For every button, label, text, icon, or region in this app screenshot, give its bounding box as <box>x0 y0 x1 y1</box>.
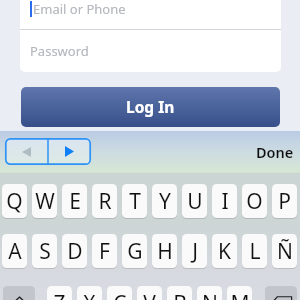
button[interactable]: X <box>77 286 102 300</box>
staticText: H <box>157 237 173 266</box>
button[interactable]: Backspace <box>265 286 297 300</box>
button[interactable]: O <box>242 184 267 218</box>
button[interactable]: T <box>122 184 147 218</box>
staticText: Y <box>159 187 171 216</box>
button[interactable]: H <box>152 234 177 268</box>
staticText: F <box>99 237 110 266</box>
staticText: L <box>249 237 261 266</box>
staticText: A <box>8 237 22 266</box>
button[interactable]: U <box>182 184 207 218</box>
button[interactable]: Shift <box>3 286 35 300</box>
staticText: D <box>67 237 83 266</box>
staticText: M <box>230 289 250 300</box>
button[interactable]: V <box>137 286 162 300</box>
button[interactable]: M <box>227 286 252 300</box>
staticText: Log In <box>126 96 175 117</box>
staticText: K <box>218 237 231 266</box>
button[interactable]: Password <box>20 30 281 72</box>
button[interactable]: A <box>2 234 27 268</box>
staticText: S <box>39 237 51 266</box>
staticText: Password <box>30 42 89 60</box>
button[interactable]: P <box>272 184 297 218</box>
staticText: T <box>129 187 141 216</box>
button[interactable]: F <box>92 234 117 268</box>
staticText: U <box>187 187 203 216</box>
staticText: B <box>173 289 187 300</box>
button[interactable]: S <box>32 234 57 268</box>
staticText: P <box>278 187 291 216</box>
button[interactable]: Z <box>47 286 72 300</box>
button[interactable]: B <box>167 286 192 300</box>
button[interactable]: L <box>242 234 267 268</box>
button[interactable]: Done <box>255 138 295 166</box>
button[interactable]: R <box>92 184 117 218</box>
staticText: W <box>35 187 55 216</box>
staticText: Email or Phone <box>33 0 126 18</box>
staticText: G <box>127 237 143 266</box>
button[interactable]: Y <box>152 184 177 218</box>
button[interactable]: J <box>182 234 207 268</box>
button[interactable]: E <box>62 184 87 218</box>
staticText: C <box>113 289 127 300</box>
button[interactable]: I <box>212 184 237 218</box>
button[interactable]: G <box>122 234 147 268</box>
staticText: N <box>202 289 218 300</box>
button[interactable]: Ñ <box>272 234 297 268</box>
staticText: I <box>221 187 229 216</box>
button[interactable]: C <box>107 286 132 300</box>
staticText: Q <box>6 187 23 216</box>
staticText: E <box>69 187 81 216</box>
staticText: R <box>98 187 112 216</box>
button[interactable]: D <box>62 234 87 268</box>
staticText: Z <box>53 289 66 300</box>
staticText: V <box>143 289 156 300</box>
staticText: O <box>246 187 263 216</box>
staticText: Done <box>256 142 294 162</box>
staticText: J <box>192 237 198 266</box>
button[interactable]: Q <box>2 184 27 218</box>
button[interactable]: Previous field <box>5 138 48 165</box>
staticText: Ñ <box>277 237 293 266</box>
button[interactable]: N <box>197 286 222 300</box>
button[interactable]: Log In <box>21 87 280 127</box>
button[interactable]: W <box>32 184 57 218</box>
button[interactable]: Email or Phone <box>20 0 281 29</box>
button[interactable]: Next field <box>48 138 91 165</box>
staticText: X <box>83 289 96 300</box>
button[interactable]: K <box>212 234 237 268</box>
